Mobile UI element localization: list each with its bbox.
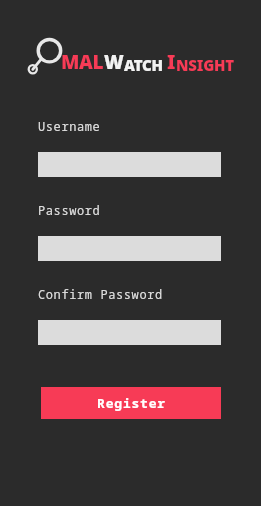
staticText: ATCH: [124, 55, 163, 75]
staticText: MAL: [61, 49, 104, 75]
button[interactable]: Register: [41, 387, 221, 419]
staticText: Register: [97, 394, 166, 412]
staticText: Confirm Password: [38, 286, 163, 302]
staticText: NSIGHT: [176, 55, 235, 75]
staticText: W: [104, 49, 124, 75]
staticText: I: [167, 49, 176, 75]
staticText: Username: [38, 118, 101, 134]
staticText: Password: [38, 202, 101, 218]
